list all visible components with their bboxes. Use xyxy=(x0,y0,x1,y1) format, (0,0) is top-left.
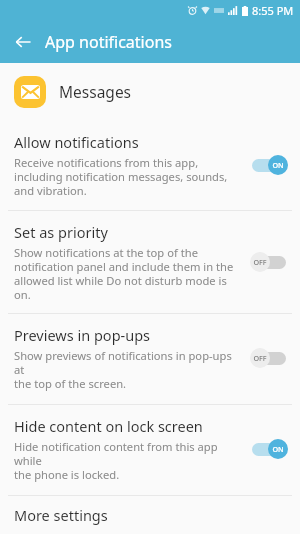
staticText: ON xyxy=(272,160,284,170)
staticText: OFF xyxy=(253,257,267,267)
button[interactable]: Set as priority xyxy=(0,211,300,313)
button[interactable]: Messages xyxy=(0,63,300,120)
button[interactable]: Toggle on xyxy=(248,435,290,463)
button[interactable]: Toggle off xyxy=(248,248,290,276)
button[interactable]: Previews in pop-ups xyxy=(0,314,300,404)
staticText: Receive notifications from this app, inc… xyxy=(14,155,228,198)
staticText: Messages xyxy=(59,81,132,102)
staticText: Set as priority xyxy=(14,222,108,242)
staticText: Show previews of notifications in pop-up… xyxy=(14,348,242,391)
button[interactable]: Allow notifications xyxy=(0,120,300,210)
staticText: Hide notification content from this app … xyxy=(14,439,242,482)
button[interactable]: Toggle off xyxy=(248,344,290,372)
staticText: Show notifications at the top of the not… xyxy=(14,245,242,302)
staticText: Allow notifications xyxy=(14,132,139,152)
button[interactable]: Back xyxy=(6,25,40,59)
staticText: ON xyxy=(272,444,284,454)
staticText: 8:55 PM xyxy=(252,3,294,18)
staticText: More settings xyxy=(14,505,108,525)
button[interactable]: Hide content on lock screen xyxy=(0,405,300,495)
staticText: OFF xyxy=(253,353,267,363)
staticText: App notifications xyxy=(45,31,172,53)
button[interactable]: More settings xyxy=(0,496,300,534)
staticText: Previews in pop-ups xyxy=(14,325,151,345)
button[interactable]: Toggle on xyxy=(248,151,290,179)
staticText: Hide content on lock screen xyxy=(14,416,203,436)
